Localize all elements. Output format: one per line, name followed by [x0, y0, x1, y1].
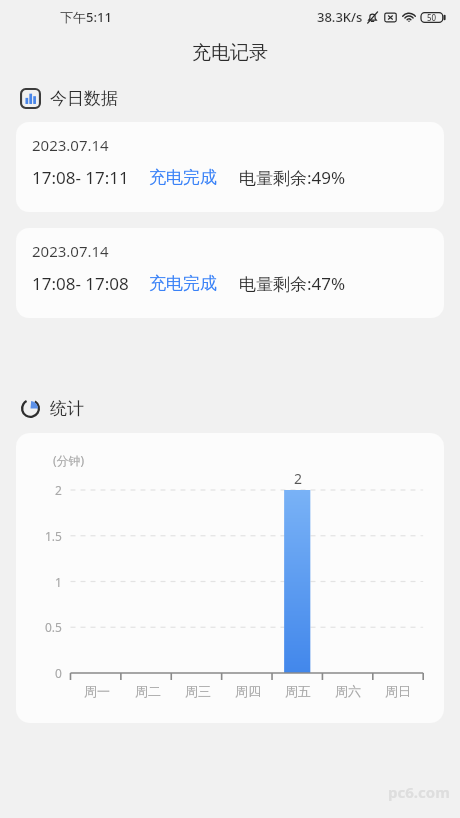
- staticText: 电量剩余:49%: [239, 166, 346, 189]
- staticText: 38.3K/s: [317, 8, 363, 26]
- button[interactable]: Today data: [0, 86, 460, 111]
- staticText: 周日: [385, 683, 411, 699]
- staticText: 2023.07.14: [32, 241, 109, 261]
- staticText: (分钟): [53, 452, 85, 468]
- staticText: 今日数据: [50, 88, 118, 109]
- staticText: 0.5: [45, 619, 62, 635]
- button[interactable]: 周五: [273, 683, 323, 699]
- button[interactable]: 周二: [122, 683, 173, 699]
- staticText: 0: [55, 665, 62, 681]
- other: Statistics: [20, 398, 41, 419]
- button[interactable]: 周一: [71, 683, 122, 699]
- staticText: 17:08- 17:11: [32, 166, 129, 189]
- button[interactable]: Statistics: [0, 396, 460, 421]
- staticText: 周一: [84, 683, 110, 699]
- button[interactable]: 周四: [223, 683, 273, 699]
- staticText: 下午5:11: [60, 8, 112, 26]
- staticText: 统计: [50, 398, 84, 419]
- staticText: 17:08- 17:08: [32, 272, 129, 295]
- staticText: 周四: [235, 683, 261, 699]
- button[interactable]: 周日: [373, 683, 423, 699]
- staticText: 周六: [335, 683, 361, 699]
- button[interactable]: 周三: [173, 683, 223, 699]
- staticText: 周三: [185, 683, 211, 699]
- staticText: 周二: [135, 683, 161, 699]
- staticText: 周五: [285, 683, 311, 699]
- staticText: pc6.com: [388, 782, 450, 802]
- button[interactable]: 2023.07.14: [16, 228, 444, 318]
- staticText: 2: [294, 469, 303, 488]
- button[interactable]: 2023.07.14: [16, 122, 444, 212]
- staticText: 充电记录: [192, 41, 268, 65]
- staticText: 50: [427, 12, 437, 23]
- other: Today data: [20, 88, 41, 109]
- staticText: 电量剩余:47%: [239, 272, 346, 295]
- staticText: 充电完成: [149, 273, 217, 294]
- staticText: 1: [55, 574, 62, 590]
- staticText: 1.5: [45, 528, 62, 544]
- staticText: 2: [55, 482, 62, 498]
- button[interactable]: 周六: [323, 683, 373, 699]
- staticText: 充电完成: [149, 167, 217, 188]
- staticText: 2023.07.14: [32, 135, 109, 155]
